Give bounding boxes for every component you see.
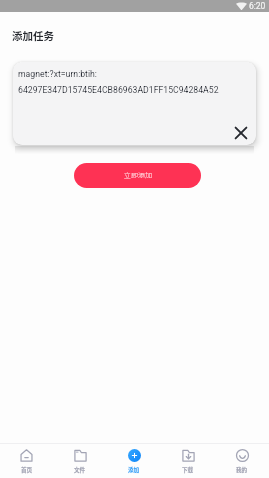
staticText: 文件 [74,466,86,474]
staticText: 立即添加 [124,170,152,180]
button[interactable]: 文件 [53,444,107,478]
button[interactable]: 立即添加 [74,163,201,188]
button[interactable]: 添加 [107,444,161,478]
button[interactable]: 首页 [0,444,53,478]
staticText: 首页 [21,466,33,474]
staticText: 添加任务 [12,28,54,43]
button[interactable]: Clear text [229,121,253,145]
button[interactable]: 下载 [161,444,215,478]
staticText: 我的 [236,466,248,474]
button[interactable]: 我的 [215,444,269,478]
staticText: 下载 [182,466,194,474]
staticText: 64297E347D15745E4CB86963AD1FF15C94284A52 [18,85,219,95]
staticText: magnet:?xt=urn:btih: [18,69,97,79]
staticText: 6:20 [249,1,266,11]
staticText: 添加 [128,466,140,474]
